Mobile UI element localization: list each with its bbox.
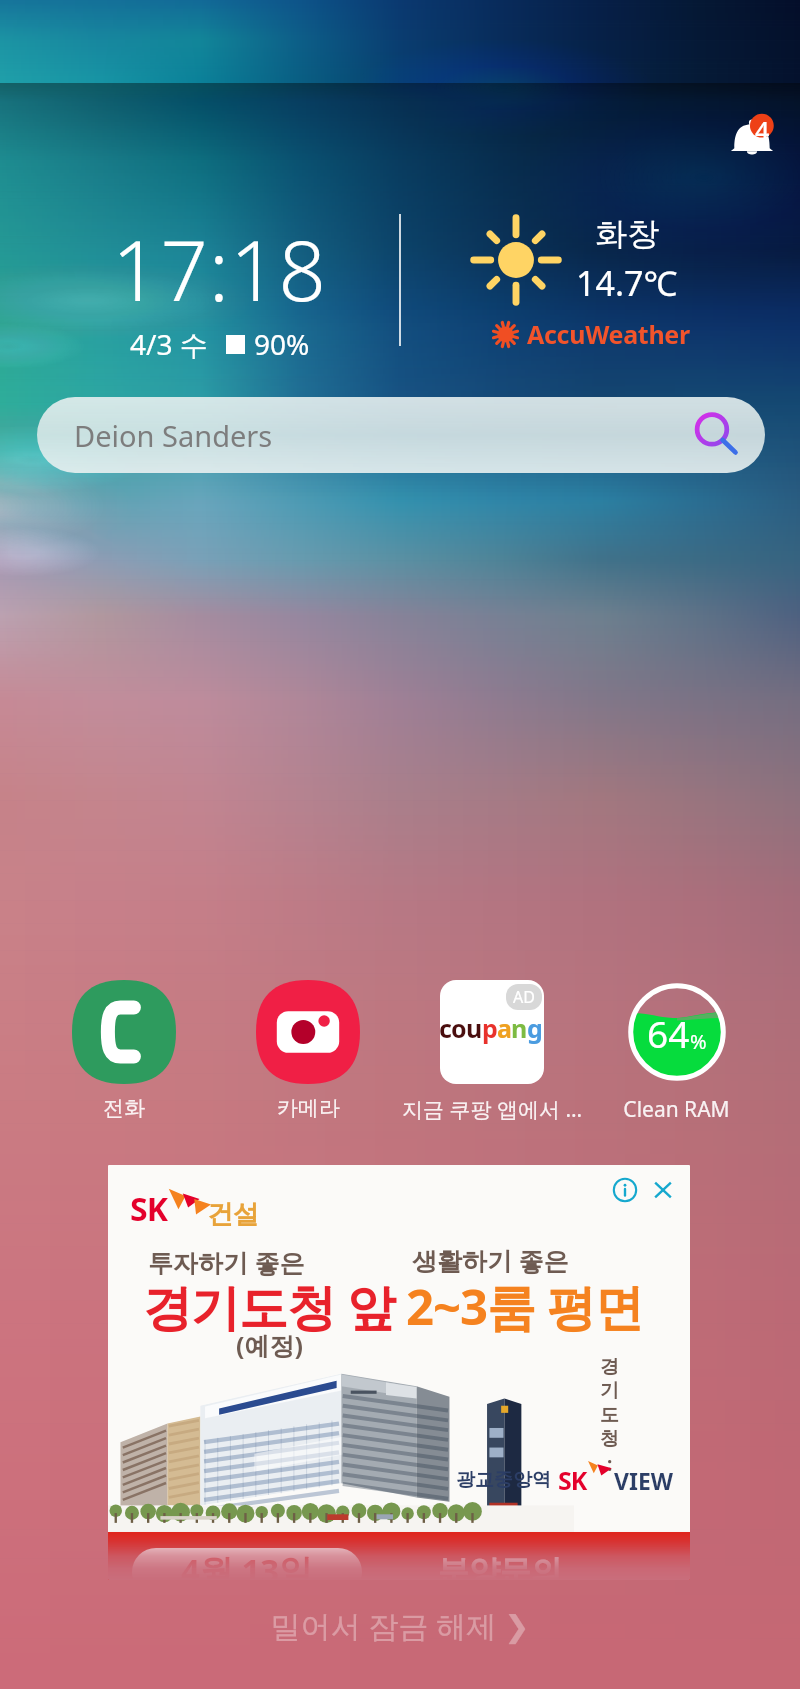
button[interactable]: Notifications	[718, 106, 786, 174]
staticText: 90%	[254, 325, 310, 363]
staticText: 광교중앙역	[456, 1468, 551, 1492]
staticText: n	[511, 1011, 527, 1045]
staticText: 64	[647, 1008, 690, 1058]
button[interactable]: 64	[586, 974, 766, 1124]
staticText: VIEW	[614, 1465, 674, 1496]
staticText: 14.7℃	[576, 260, 678, 306]
staticText: o	[451, 1011, 466, 1045]
staticText: 경	[600, 1355, 619, 1379]
staticText: 생활하기 좋은	[412, 1243, 569, 1277]
staticText: AD	[513, 986, 535, 1008]
staticText: 분양문의	[438, 1552, 562, 1580]
staticText: AccuWeather	[527, 317, 690, 351]
staticText: 경기도청 앞	[143, 1273, 395, 1340]
staticText: u	[466, 1011, 482, 1045]
staticText: Deion Sanders	[74, 416, 273, 455]
button[interactable]: 카메라	[218, 974, 398, 1124]
staticText: :	[607, 1451, 613, 1477]
staticText: %	[690, 1028, 707, 1055]
button[interactable]: 전화	[34, 974, 214, 1124]
staticText: 도	[600, 1403, 619, 1427]
staticText: c	[440, 1011, 451, 1045]
staticText: Clean RAM	[623, 1095, 730, 1124]
staticText: 청	[600, 1427, 619, 1451]
staticText: 전화	[103, 1095, 145, 1121]
staticText: 4월 13일	[181, 1548, 313, 1580]
button[interactable]: Ad information	[610, 1175, 640, 1205]
staticText: g	[527, 1011, 542, 1045]
staticText: 밀어서 잠금 해제 ❯	[0, 1605, 800, 1646]
button[interactable]: Ad information	[108, 1165, 690, 1580]
staticText: 기	[600, 1379, 619, 1403]
staticText: 4	[755, 113, 770, 147]
staticText: 건설	[207, 1198, 259, 1231]
staticText: p	[482, 1011, 497, 1045]
staticText: (예정)	[236, 1328, 303, 1362]
staticText: SK	[558, 1463, 587, 1497]
staticText: 지금 쿠팡 앱에서 바...	[402, 1095, 582, 1124]
staticText: 17:18	[112, 212, 327, 325]
button[interactable]: Deion Sanders	[37, 397, 765, 473]
staticText: 투자하기 좋은	[148, 1245, 305, 1279]
staticText: a	[497, 1011, 511, 1045]
staticText: 4/3 수	[130, 325, 208, 363]
staticText: 2~3룸 평면	[406, 1273, 643, 1340]
staticText: 화창	[595, 214, 659, 254]
staticText: 카메라	[277, 1095, 340, 1121]
staticText: SK	[130, 1187, 167, 1231]
button[interactable]: c	[402, 974, 582, 1124]
button[interactable]: Close ad	[648, 1175, 678, 1205]
